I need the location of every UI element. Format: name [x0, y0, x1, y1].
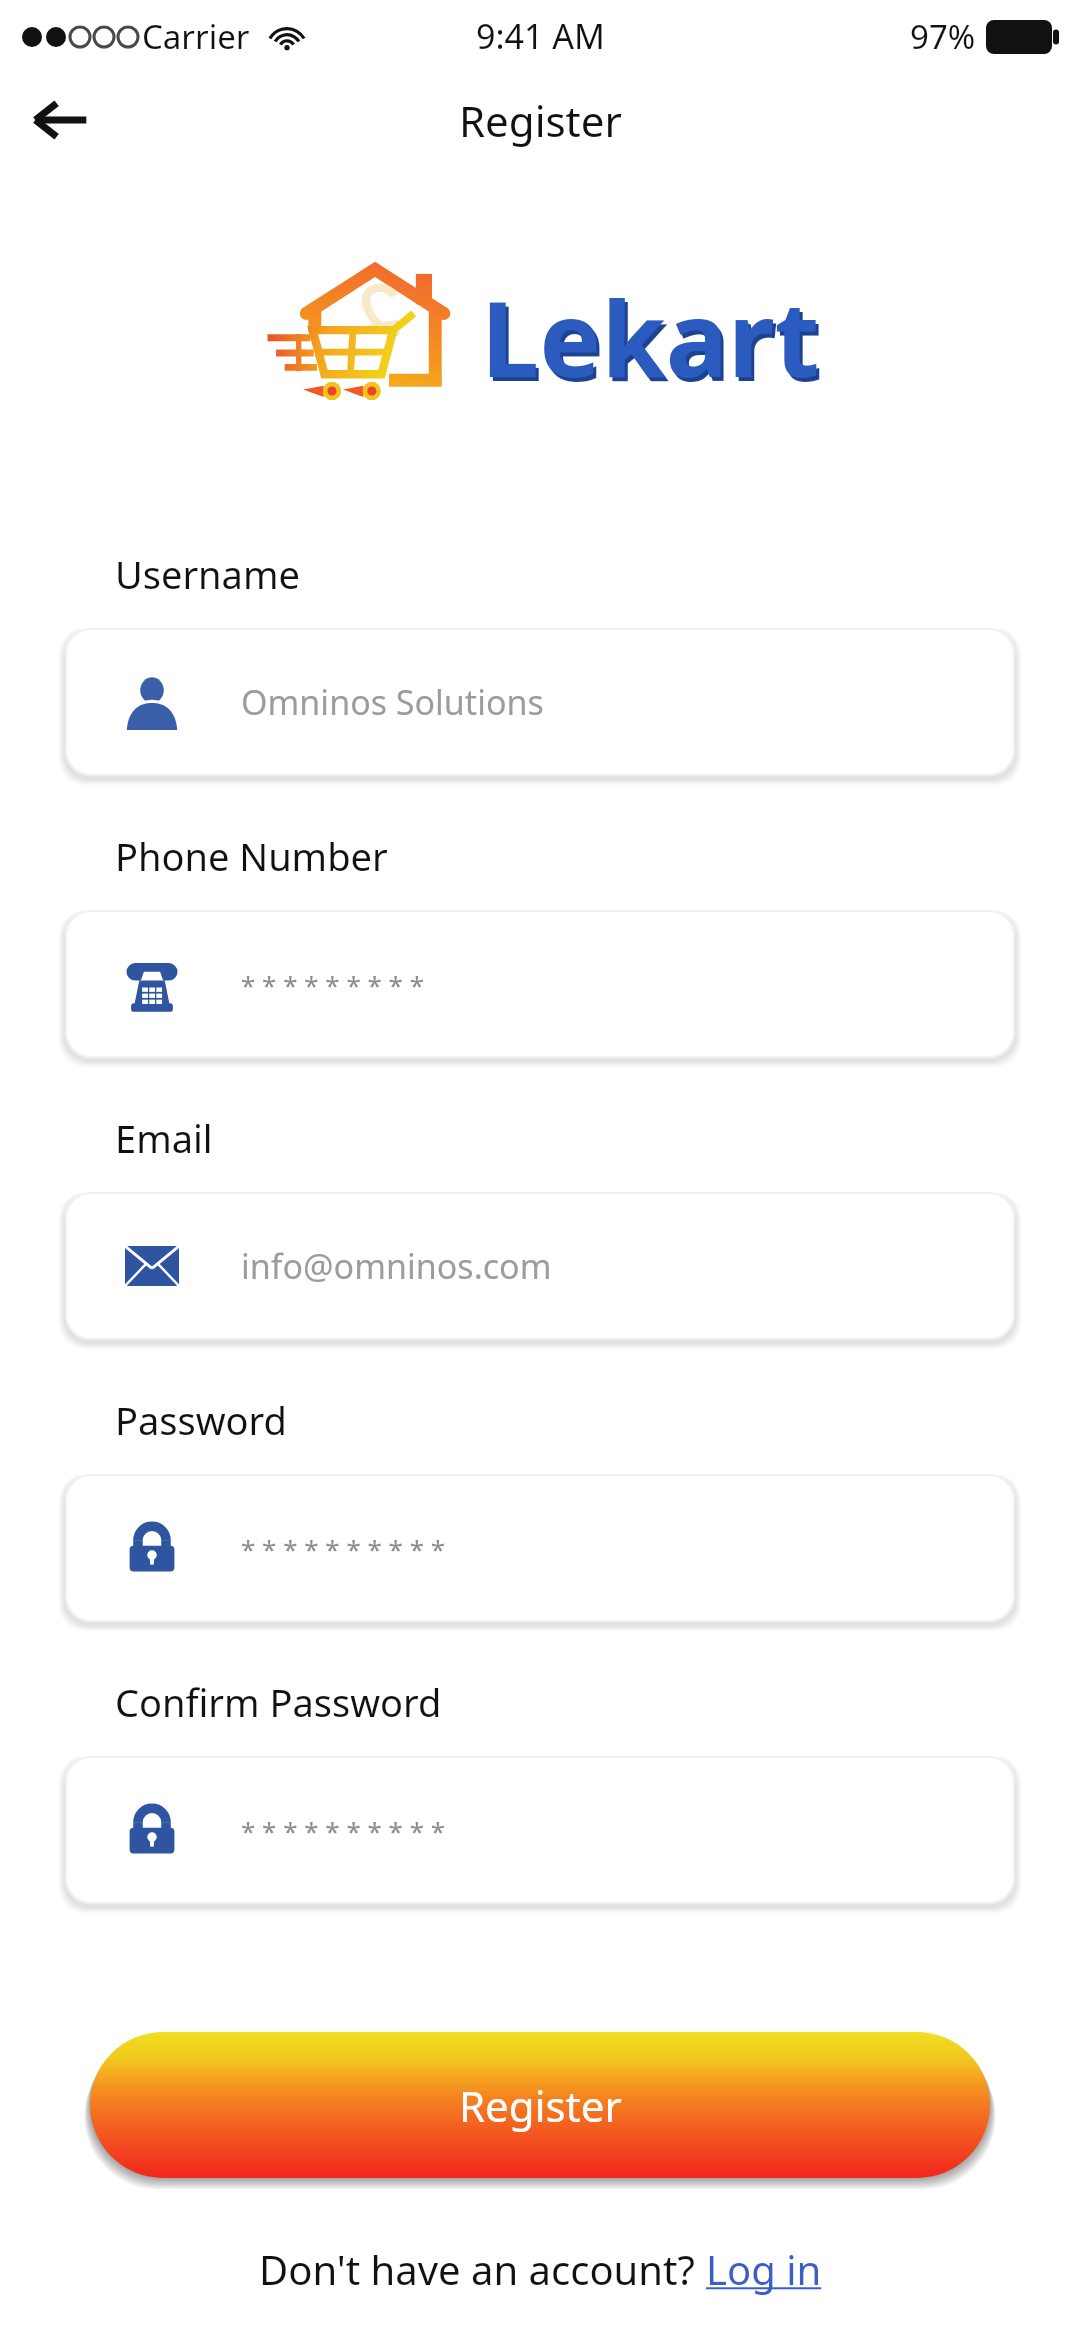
staticText: info@omninos.com [241, 1243, 552, 1289]
staticText: Register [459, 2077, 622, 2134]
staticText: * * * * * * * * * * [241, 1531, 446, 1566]
button[interactable]: Back [22, 82, 98, 158]
staticText: Register [459, 92, 622, 149]
staticText: Log in [706, 2242, 822, 2296]
button[interactable]: info@omninos.com [65, 1192, 1015, 1340]
button[interactable]: Register [90, 2032, 990, 2178]
staticText: Email [115, 1112, 213, 1164]
staticText: Confirm Password [115, 1676, 442, 1728]
staticText: Password [115, 1394, 287, 1446]
button[interactable]: Log in [706, 2242, 822, 2296]
staticText: Don't have an account? [259, 2242, 706, 2296]
staticText: * * * * * * * * * [241, 967, 425, 1002]
button[interactable]: * * * * * * * * * * [65, 1474, 1015, 1622]
button[interactable]: * * * * * * * * * [65, 910, 1015, 1058]
button[interactable]: Omninos Solutions [65, 628, 1015, 776]
staticText: Carrier [142, 14, 250, 59]
staticText: Phone Number [115, 830, 388, 882]
staticText: Username [115, 548, 300, 600]
staticText: * * * * * * * * * * [241, 1813, 446, 1848]
staticText: Omninos Solutions [241, 679, 544, 725]
staticText: 9:41 AM [476, 13, 605, 59]
staticText: Lekart [484, 270, 823, 412]
staticText: Lekart [481, 266, 820, 408]
staticText: 97% [910, 14, 976, 59]
button[interactable]: * * * * * * * * * * [65, 1756, 1015, 1904]
